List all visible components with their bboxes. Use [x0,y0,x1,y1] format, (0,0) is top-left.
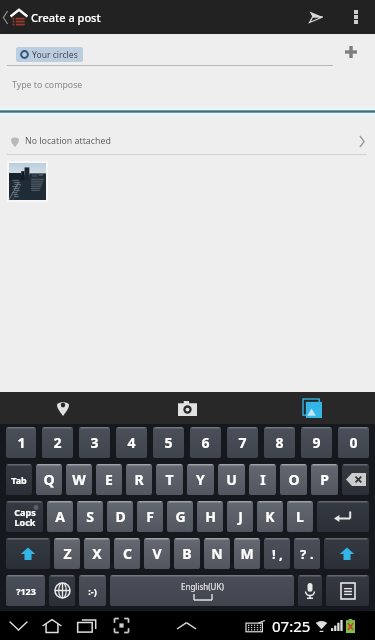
staticText: S [86,507,94,526]
button[interactable]: G [167,501,193,532]
button[interactable]: W [66,464,92,495]
button[interactable]: Tab [6,464,32,495]
staticText: 9 [312,433,321,452]
staticText: P [320,470,329,489]
button[interactable]: O [280,464,307,495]
button[interactable]: :-) [79,575,106,606]
button[interactable]: Choose photo [250,392,375,424]
button[interactable] [317,501,369,532]
button[interactable]: ?123 [6,575,45,606]
button[interactable] [326,575,369,606]
button[interactable]: 9 [301,427,332,458]
button[interactable]: Take photo [125,392,250,424]
button[interactable]: N [204,538,230,569]
button[interactable]: Back [2,611,35,640]
staticText: Tab [11,474,27,486]
button[interactable]: J [227,501,253,532]
button[interactable]: Caps Lock [6,501,43,532]
button[interactable]: Y [187,464,214,495]
staticText: A [55,507,65,526]
button[interactable]: S [77,501,103,532]
button[interactable]: English(UK) [110,575,294,606]
button[interactable]: F [137,501,163,532]
staticText: O [288,470,300,489]
button[interactable]: Create a post [0,8,107,27]
button[interactable]: T [156,464,183,495]
button[interactable]: 5 [153,427,184,458]
staticText: Caps Lock [14,506,36,528]
staticText: ?123 [16,585,36,597]
button[interactable] [6,538,50,569]
button[interactable]: Add circle [334,38,368,66]
button[interactable]: Add location [0,392,125,424]
staticText: M [240,544,254,563]
staticText: :-) [88,585,97,597]
button[interactable]: D [107,501,133,532]
staticText: F [146,507,154,526]
button[interactable]: B [174,538,200,569]
staticText: Y [196,470,205,489]
button[interactable]: C [114,538,140,569]
button[interactable]: I [249,464,276,495]
staticText: 07:25 [272,616,311,636]
button[interactable]: 2 [42,427,73,458]
staticText: Type to compose [12,79,83,91]
staticText: Your circles [32,49,78,61]
button[interactable]: 4 [116,427,147,458]
button[interactable]: No location attached [0,128,375,154]
button[interactable]: 1 [6,427,36,458]
staticText: H [205,507,216,526]
button[interactable]: ! [264,538,290,569]
staticText: 1 [17,433,26,452]
button[interactable] [342,464,369,495]
button[interactable]: 7 [227,427,258,458]
button[interactable]: Screenshot [106,611,137,640]
staticText: C [123,544,132,563]
staticText: B [182,544,192,563]
button[interactable]: Attached photo [9,163,46,200]
button[interactable] [298,575,322,606]
button[interactable]: X [84,538,110,569]
staticText: ? [300,545,307,563]
staticText: J [238,507,243,526]
staticText: T [165,470,174,489]
button[interactable]: 0 [338,427,369,458]
button[interactable]: Recent apps [72,611,103,640]
button[interactable]: V [144,538,170,569]
button[interactable] [49,575,75,606]
staticText: N [211,544,223,563]
button[interactable]: E [96,464,122,495]
staticText: 6 [201,433,210,452]
button[interactable]: Your circles [16,47,83,62]
button[interactable]: R [126,464,152,495]
button[interactable]: K [257,501,283,532]
button[interactable]: Home [36,611,68,640]
button[interactable]: L [287,501,313,532]
staticText: 8 [275,433,284,452]
button[interactable]: 8 [264,427,295,458]
staticText: ! [272,545,276,563]
staticText: 2 [53,433,62,452]
button[interactable]: 3 [79,427,110,458]
button[interactable]: 6 [190,427,221,458]
staticText: 0 [349,433,358,452]
staticText: No location attached [25,135,111,147]
button[interactable]: A [47,501,73,532]
button[interactable]: Send [290,0,341,34]
staticText: 4 [127,433,136,452]
button[interactable]: Q [36,464,62,495]
staticText: Create a post [31,10,101,25]
staticText: U [226,470,237,489]
button[interactable]: ? [294,538,320,569]
button[interactable]: Z [54,538,80,569]
button[interactable]: H [197,501,223,532]
staticText: W [72,470,86,489]
button[interactable]: U [218,464,245,495]
staticText: English(UK) [181,581,224,592]
button[interactable]: M [234,538,260,569]
button[interactable] [324,538,369,569]
button[interactable]: P [311,464,338,495]
button[interactable]: More options [341,0,370,34]
button[interactable]: Expand [170,611,203,640]
staticText: Z [63,544,72,563]
